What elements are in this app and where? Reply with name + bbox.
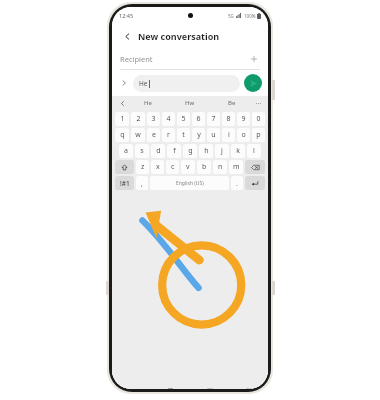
staticText: 4 (166, 114, 171, 124)
staticText: o (241, 130, 246, 140)
button[interactable]: Be (211, 96, 253, 109)
button[interactable]: , (136, 176, 148, 190)
staticText: d (156, 146, 161, 156)
button[interactable]: 8 (222, 112, 235, 126)
staticText: a (124, 146, 128, 156)
button[interactable]: g (183, 144, 197, 158)
button[interactable]: Backspace (245, 160, 265, 174)
staticText: 1 (120, 114, 125, 124)
staticText: 9 (241, 114, 246, 124)
staticText: 0 (256, 114, 261, 124)
button[interactable]: j (215, 144, 229, 158)
staticText: m (233, 162, 240, 172)
button[interactable]: 1 (115, 112, 129, 126)
staticText: i (228, 130, 230, 140)
button[interactable]: Send (244, 74, 262, 92)
button[interactable]: v (181, 160, 195, 174)
button[interactable]: Hw (169, 96, 211, 109)
button[interactable]: 4 (162, 112, 175, 126)
staticText: q (120, 130, 125, 140)
button[interactable]: 2 (131, 112, 145, 126)
button[interactable]: e (147, 128, 160, 142)
button[interactable]: h (199, 144, 213, 158)
button[interactable]: k (231, 144, 245, 158)
staticText: He (139, 79, 148, 88)
staticText: k (236, 146, 240, 156)
button[interactable]: Space (150, 176, 229, 190)
button[interactable]: Enter (245, 176, 265, 190)
button[interactable]: Recipient (120, 49, 260, 69)
button[interactable]: l (247, 144, 261, 158)
button[interactable]: p (252, 128, 265, 142)
button[interactable]: a (119, 144, 133, 158)
button[interactable]: i (222, 128, 235, 142)
staticText: s (140, 146, 144, 156)
button[interactable]: Expand options (117, 76, 131, 90)
button[interactable]: 0 (252, 112, 265, 126)
button[interactable]: q (115, 128, 129, 142)
button[interactable]: He (127, 96, 169, 109)
staticText: 5G (228, 13, 234, 19)
button[interactable]: o (237, 128, 250, 142)
button[interactable]: Previous suggestions (117, 98, 127, 108)
button[interactable]: w (131, 128, 145, 142)
staticText: u (211, 130, 216, 140)
button[interactable]: 5 (177, 112, 190, 126)
button[interactable]: b (197, 160, 211, 174)
staticText: , (141, 179, 143, 188)
staticText: Hw (185, 99, 195, 107)
button[interactable]: f (167, 144, 181, 158)
staticText: c (171, 162, 175, 172)
staticText: e (152, 130, 156, 140)
staticText: g (188, 146, 193, 156)
button[interactable]: 6 (192, 112, 205, 126)
button[interactable]: 3 (147, 112, 160, 126)
button[interactable]: 7 (207, 112, 220, 126)
staticText: j (221, 146, 223, 156)
staticText: 12:45 (119, 12, 134, 19)
staticText: z (141, 162, 145, 172)
button[interactable]: More options (253, 98, 263, 108)
staticText: Recipient (120, 54, 153, 64)
staticText: 6 (196, 114, 201, 124)
staticText: Be (228, 99, 236, 107)
staticText: 5 (181, 114, 186, 124)
button[interactable]: x (151, 160, 164, 174)
staticText: r (167, 130, 170, 140)
button[interactable]: c (166, 160, 179, 174)
button[interactable]: Shift (115, 160, 134, 174)
button[interactable]: He (133, 75, 240, 92)
button[interactable]: r (162, 128, 175, 142)
staticText: p (256, 130, 261, 140)
button[interactable]: m (229, 160, 243, 174)
button[interactable]: t (177, 128, 190, 142)
staticText: n (218, 162, 223, 172)
button[interactable]: y (192, 128, 205, 142)
button[interactable]: !#1 (115, 176, 134, 190)
staticText: New conversation (138, 30, 220, 42)
button[interactable]: 9 (237, 112, 250, 126)
button[interactable]: u (207, 128, 220, 142)
button[interactable]: s (135, 144, 149, 158)
button[interactable]: Add recipient (248, 53, 260, 65)
staticText: x (156, 162, 160, 172)
staticText: f (173, 146, 176, 156)
staticText: 8 (226, 114, 231, 124)
staticText: w (135, 130, 141, 140)
staticText: y (197, 130, 201, 140)
staticText: English (US) (176, 180, 204, 187)
staticText: 2 (136, 114, 141, 124)
button[interactable]: Back (120, 29, 134, 43)
staticText: . (236, 179, 238, 188)
staticText: l (253, 146, 255, 156)
staticText: 100% (244, 13, 256, 19)
staticText: !#1 (120, 179, 130, 188)
staticText: h (204, 146, 209, 156)
button[interactable]: z (136, 160, 149, 174)
button[interactable]: d (151, 144, 165, 158)
button[interactable]: n (213, 160, 227, 174)
staticText: b (202, 162, 207, 172)
staticText: 7 (211, 114, 216, 124)
button[interactable]: . (231, 176, 243, 190)
staticText: v (186, 162, 190, 172)
